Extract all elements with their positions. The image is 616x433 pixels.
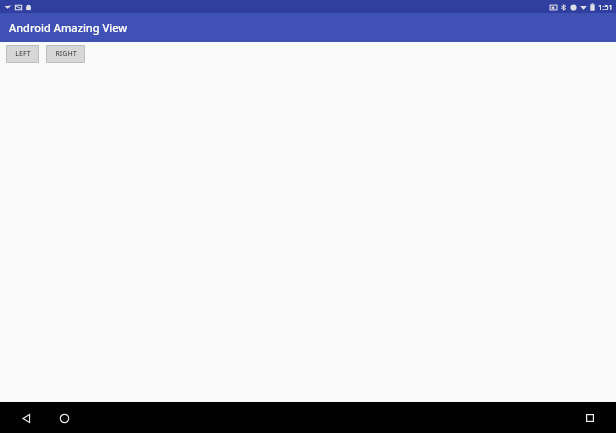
staticText: LEFT	[15, 49, 31, 59]
staticText: RIGHT	[55, 49, 77, 59]
staticText: Android Amazing View	[9, 20, 128, 35]
button[interactable]: Home	[52, 406, 76, 430]
staticText: 1:51	[598, 2, 613, 12]
button[interactable]: Back	[14, 406, 38, 430]
button[interactable]: LEFT	[6, 45, 39, 63]
button[interactable]: RIGHT	[46, 45, 85, 63]
button[interactable]: Recent apps	[578, 406, 602, 430]
